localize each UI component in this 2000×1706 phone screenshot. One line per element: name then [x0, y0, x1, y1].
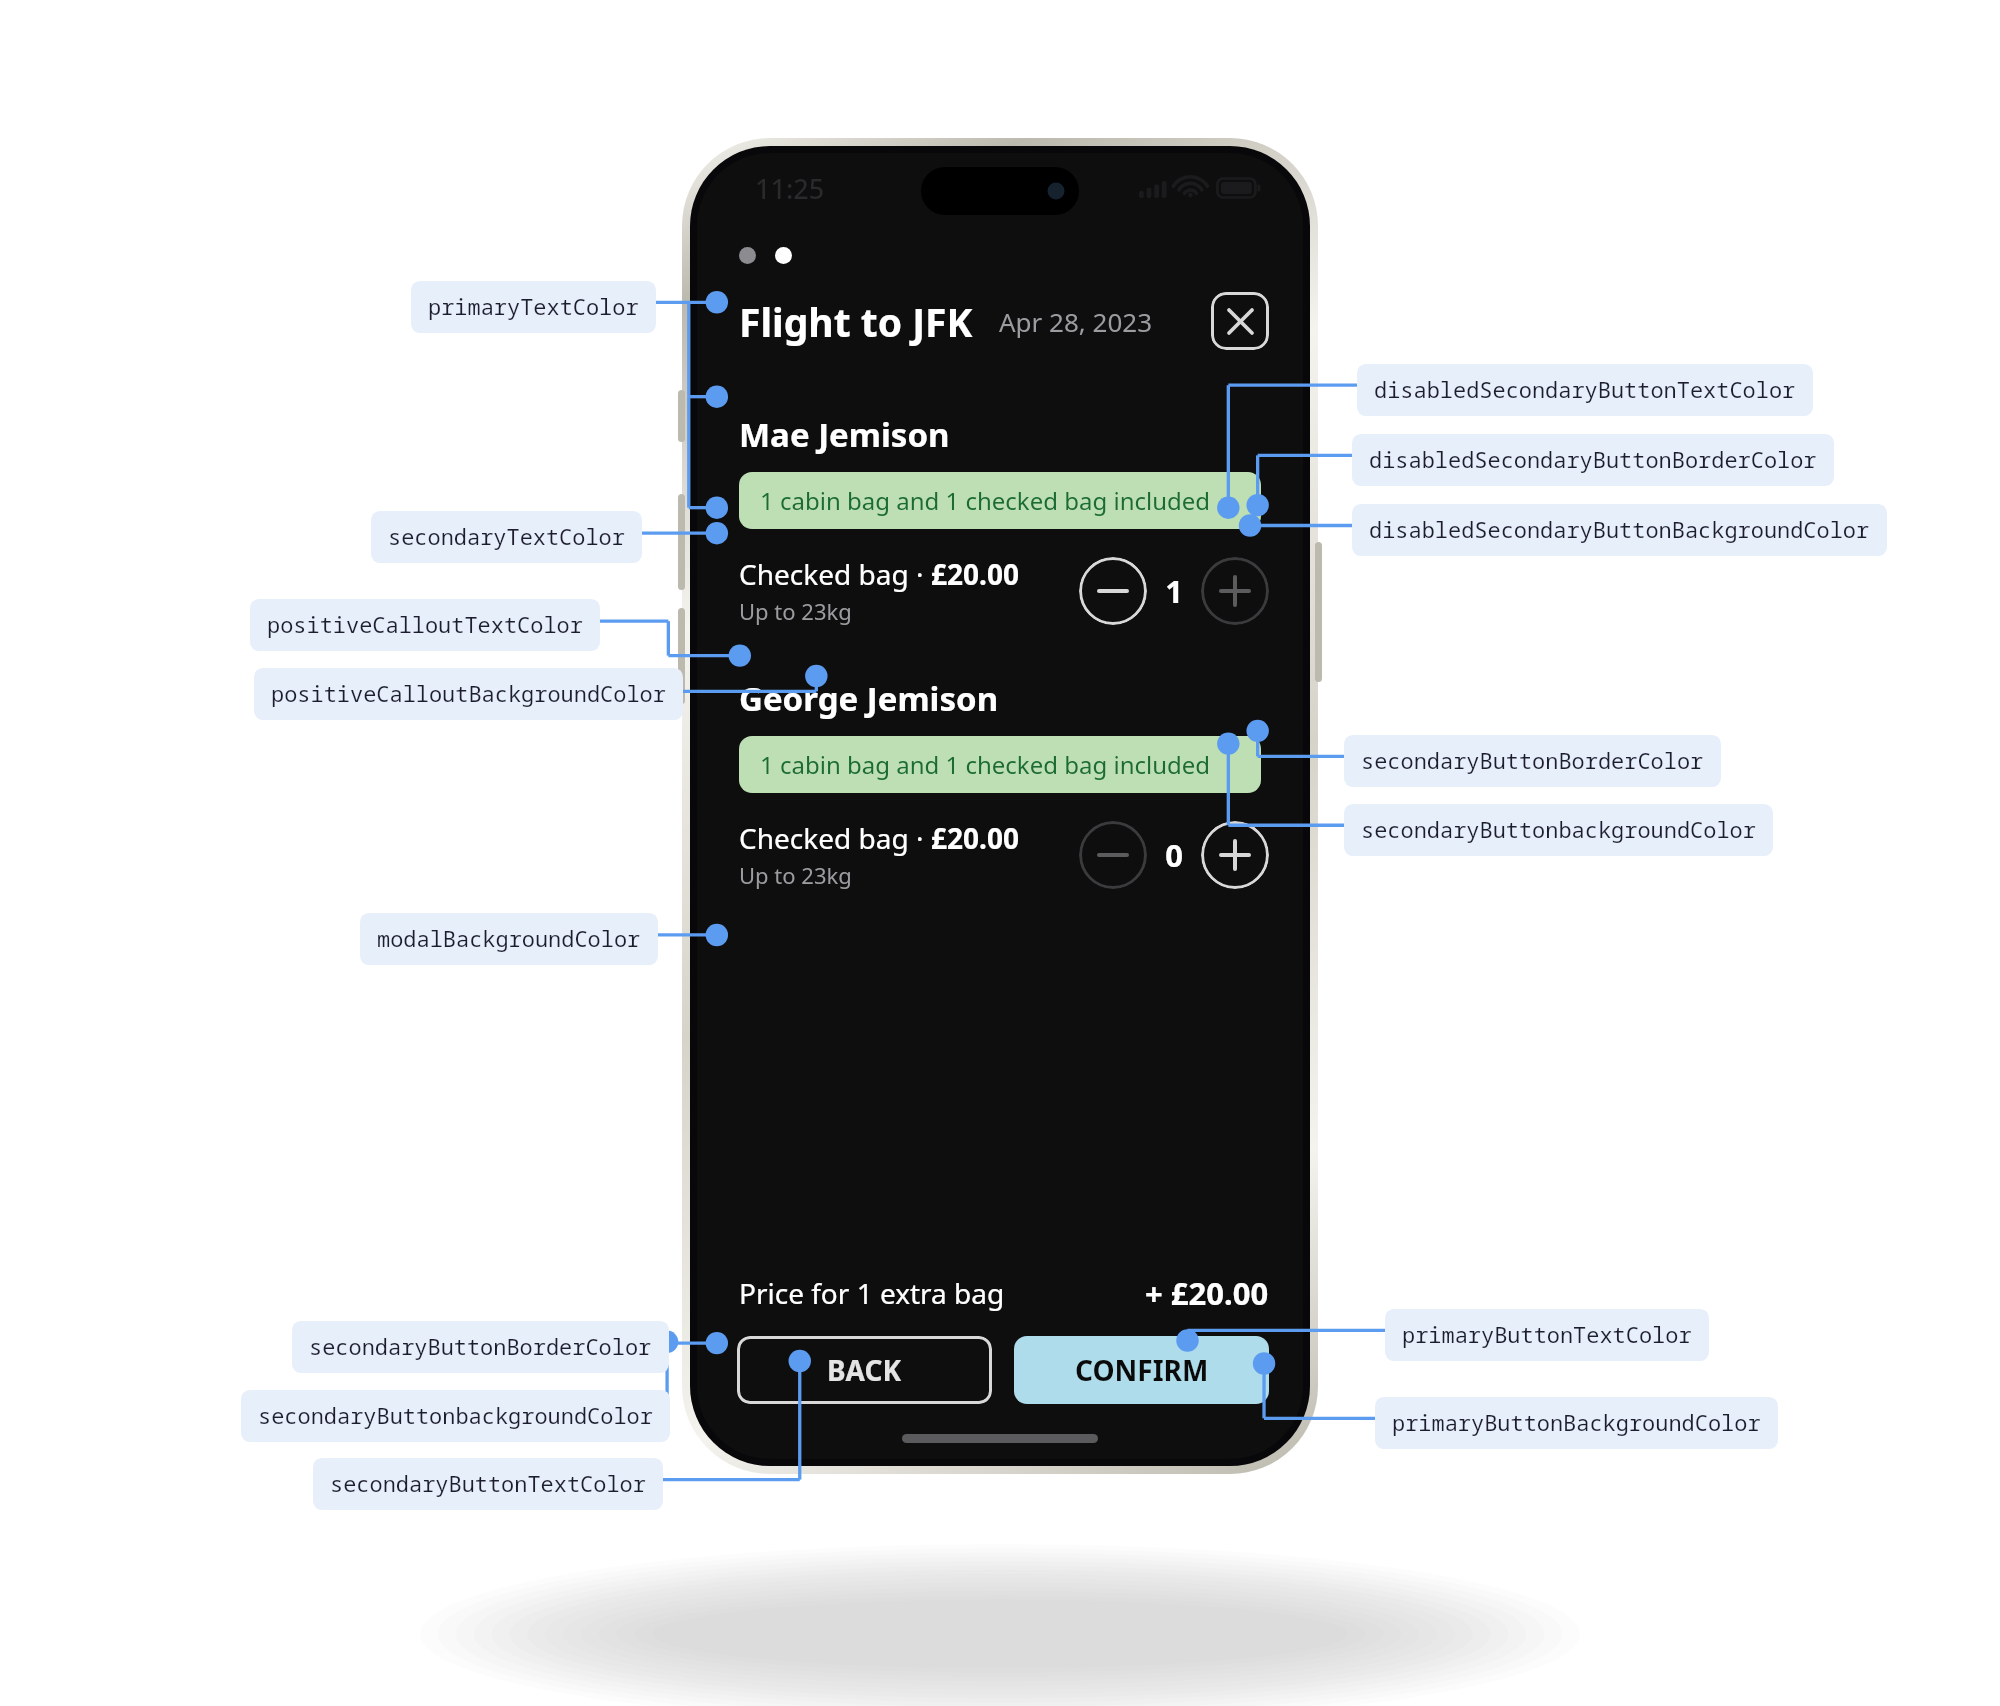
button[interactable]: Remove checked bag — [1079, 821, 1147, 889]
staticText: disabledSecondaryButtonBackgroundColor — [1369, 515, 1870, 545]
staticText: primaryButtonBackgroundColor — [1392, 1408, 1761, 1438]
staticText: positiveCalloutTextColor — [267, 610, 583, 640]
staticText: Checked bag · — [739, 819, 931, 857]
staticText: Checked bag · — [739, 555, 931, 593]
staticText: George Jemison — [739, 676, 999, 721]
staticText: 1 cabin bag and 1 checked bag included w… — [760, 748, 1240, 781]
staticText: disabledSecondaryButtonBorderColor — [1369, 445, 1817, 475]
staticText: Flight to JFK — [739, 295, 973, 348]
staticText: Up to 23kg — [739, 596, 852, 626]
staticText: £20.00 — [931, 555, 1019, 593]
staticText: secondaryButtonBorderColor — [309, 1332, 652, 1362]
staticText: secondaryButtonTextColor — [330, 1469, 646, 1499]
button[interactable]: Close — [1211, 292, 1269, 350]
staticText: secondaryButtonbackgroundColor — [258, 1401, 653, 1431]
staticText: + £20.00 — [1145, 1272, 1269, 1314]
staticText: CONFIRM — [1075, 1351, 1209, 1389]
button[interactable]: Add checked bag — [1201, 821, 1269, 889]
staticText: secondaryButtonbackgroundColor — [1361, 815, 1756, 845]
staticText: 0 — [1165, 834, 1183, 876]
staticText: Price for 1 extra bag — [739, 1274, 1005, 1312]
staticText: Up to 23kg — [739, 860, 852, 890]
staticText: modalBackgroundColor — [377, 924, 641, 954]
staticText: Mae Jemison — [739, 412, 950, 457]
staticText: £20.00 — [931, 819, 1019, 857]
staticText: secondaryButtonBorderColor — [1361, 746, 1704, 776]
staticText: positiveCalloutBackgroundColor — [271, 679, 666, 709]
button[interactable]: CONFIRM — [1014, 1336, 1269, 1404]
staticText: Apr 28, 2023 — [999, 304, 1153, 339]
staticText: 1 — [1165, 570, 1183, 612]
staticText: secondaryTextColor — [388, 522, 625, 552]
button[interactable]: Remove checked bag — [1079, 557, 1147, 625]
staticText: BACK — [827, 1351, 902, 1389]
button[interactable]: Add checked bag — [1201, 557, 1269, 625]
staticText: 11:25 — [755, 170, 825, 207]
button[interactable]: BACK — [737, 1336, 992, 1404]
staticText: disabledSecondaryButtonTextColor — [1374, 375, 1796, 405]
staticText: primaryTextColor — [428, 292, 639, 322]
staticText: primaryButtonTextColor — [1402, 1320, 1692, 1350]
staticText: 1 cabin bag and 1 checked bag included w… — [760, 484, 1240, 517]
